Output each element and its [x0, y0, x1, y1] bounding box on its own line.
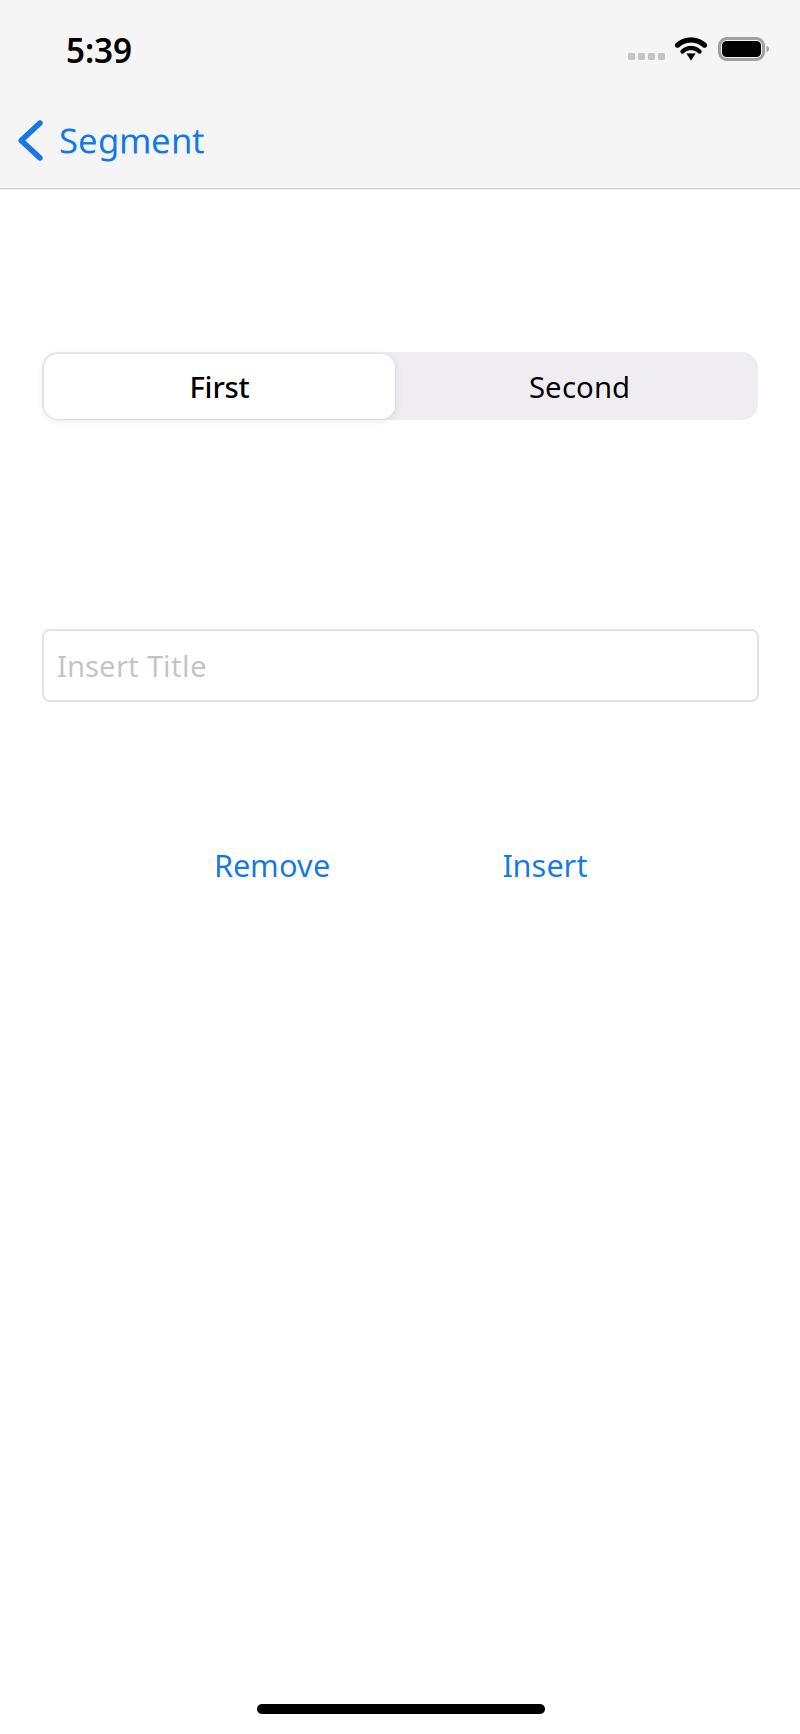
- staticText: Remove: [214, 845, 330, 885]
- staticText: First: [189, 367, 249, 406]
- button[interactable]: Segment: [0, 97, 236, 179]
- staticText: Insert Title: [57, 646, 207, 685]
- button[interactable]: Insert: [445, 835, 645, 895]
- button[interactable]: Remove: [172, 835, 372, 895]
- button[interactable]: First: [44, 354, 395, 419]
- staticText: Insert: [502, 845, 587, 885]
- staticText: 5:39: [66, 28, 132, 72]
- staticText: Second: [529, 367, 630, 406]
- button[interactable]: Second: [403, 354, 756, 419]
- staticText: Segment: [59, 117, 205, 163]
- button[interactable]: Insert Title: [43, 630, 758, 701]
